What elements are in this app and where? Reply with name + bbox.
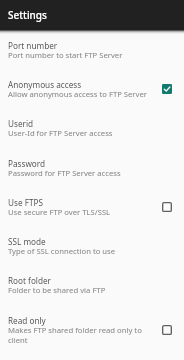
staticText: Read only bbox=[8, 315, 46, 326]
button[interactable]: Password bbox=[0, 150, 184, 189]
staticText: Use FTPS bbox=[8, 197, 43, 208]
button[interactable]: Disabled: Read only bbox=[162, 325, 172, 335]
button[interactable]: Read only bbox=[0, 307, 184, 355]
staticText: Userid bbox=[8, 118, 34, 129]
staticText: Type of SSL connection to use bbox=[8, 246, 150, 256]
staticText: Root folder bbox=[8, 275, 52, 286]
staticText: Makes FTP shared folder read only to cli… bbox=[8, 325, 150, 345]
button[interactable]: Disabled: Use FTPS bbox=[162, 202, 172, 212]
staticText: Allow anonymous access to FTP Server bbox=[8, 89, 150, 99]
button[interactable]: Port number bbox=[0, 32, 184, 71]
button[interactable]: Anonymous access bbox=[0, 71, 184, 110]
staticText: Use secure FTP over TLS/SSL bbox=[8, 207, 150, 217]
button[interactable]: Use FTPS bbox=[0, 189, 184, 228]
button[interactable]: Enabled: Anonymous access bbox=[162, 84, 172, 94]
staticText: Password bbox=[8, 158, 46, 169]
staticText: Port number to start FTP Server bbox=[8, 50, 150, 60]
staticText: Anonymous access bbox=[8, 79, 82, 90]
staticText: Port number bbox=[8, 40, 58, 51]
button[interactable]: Root folder bbox=[0, 267, 184, 307]
staticText: Settings bbox=[8, 8, 47, 22]
staticText: User-Id for FTP Server access bbox=[8, 128, 150, 138]
button[interactable]: Userid bbox=[0, 110, 184, 150]
staticText: Password for FTP Server access bbox=[8, 168, 150, 178]
staticText: Folder to be shared via FTP bbox=[8, 285, 150, 295]
button[interactable]: SSL mode bbox=[0, 228, 184, 267]
staticText: SSL mode bbox=[8, 236, 46, 247]
